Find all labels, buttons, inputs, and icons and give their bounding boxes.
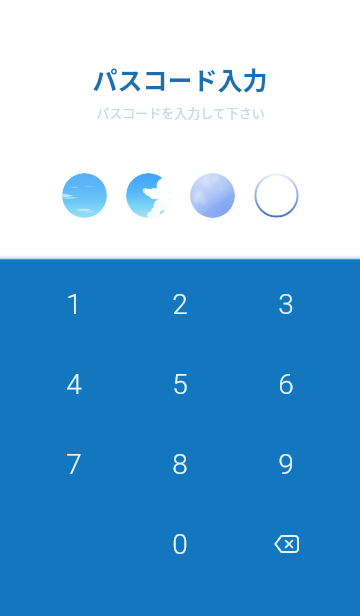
button[interactable]: 6	[233, 344, 339, 424]
staticText: 9	[278, 448, 294, 481]
staticText: 7	[66, 448, 82, 481]
button[interactable]: 8	[127, 424, 233, 504]
button[interactable]: 9	[233, 424, 339, 504]
staticText: 4	[66, 368, 82, 401]
button[interactable]: 2	[127, 264, 233, 344]
staticText: パスコードを入力して下さい	[96, 103, 265, 122]
button[interactable]: 3	[233, 264, 339, 344]
button[interactable]: 7	[21, 424, 127, 504]
button[interactable]: 0	[127, 504, 233, 584]
staticText: 1	[66, 288, 82, 321]
staticText: 0	[172, 528, 188, 561]
button[interactable]: 1	[21, 264, 127, 344]
button[interactable]: 5	[127, 344, 233, 424]
button[interactable]: 4	[21, 344, 127, 424]
staticText: 6	[278, 368, 294, 401]
staticText: 3	[278, 288, 294, 321]
staticText: パスコード入力	[92, 61, 268, 97]
staticText: 5	[172, 368, 188, 401]
button[interactable]: Backspace	[233, 504, 339, 584]
staticText: 2	[172, 288, 188, 321]
staticText: 8	[172, 448, 188, 481]
